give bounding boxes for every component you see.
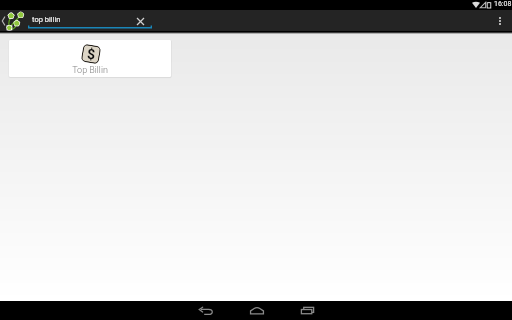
staticText: Top Billin	[72, 65, 108, 76]
staticText: $	[85, 45, 98, 63]
button[interactable]: Back	[180, 301, 231, 320]
staticText: 16:08	[494, 0, 512, 8]
staticText: top billin	[32, 15, 61, 24]
button[interactable]: Recent apps	[282, 301, 333, 320]
button[interactable]: Clear search	[133, 14, 148, 29]
button[interactable]: Home	[231, 301, 282, 320]
button[interactable]: More options	[491, 10, 509, 31]
button[interactable]: App icon	[6, 12, 24, 32]
button[interactable]: $	[9, 40, 171, 77]
button[interactable]: Navigate up	[0, 10, 7, 31]
